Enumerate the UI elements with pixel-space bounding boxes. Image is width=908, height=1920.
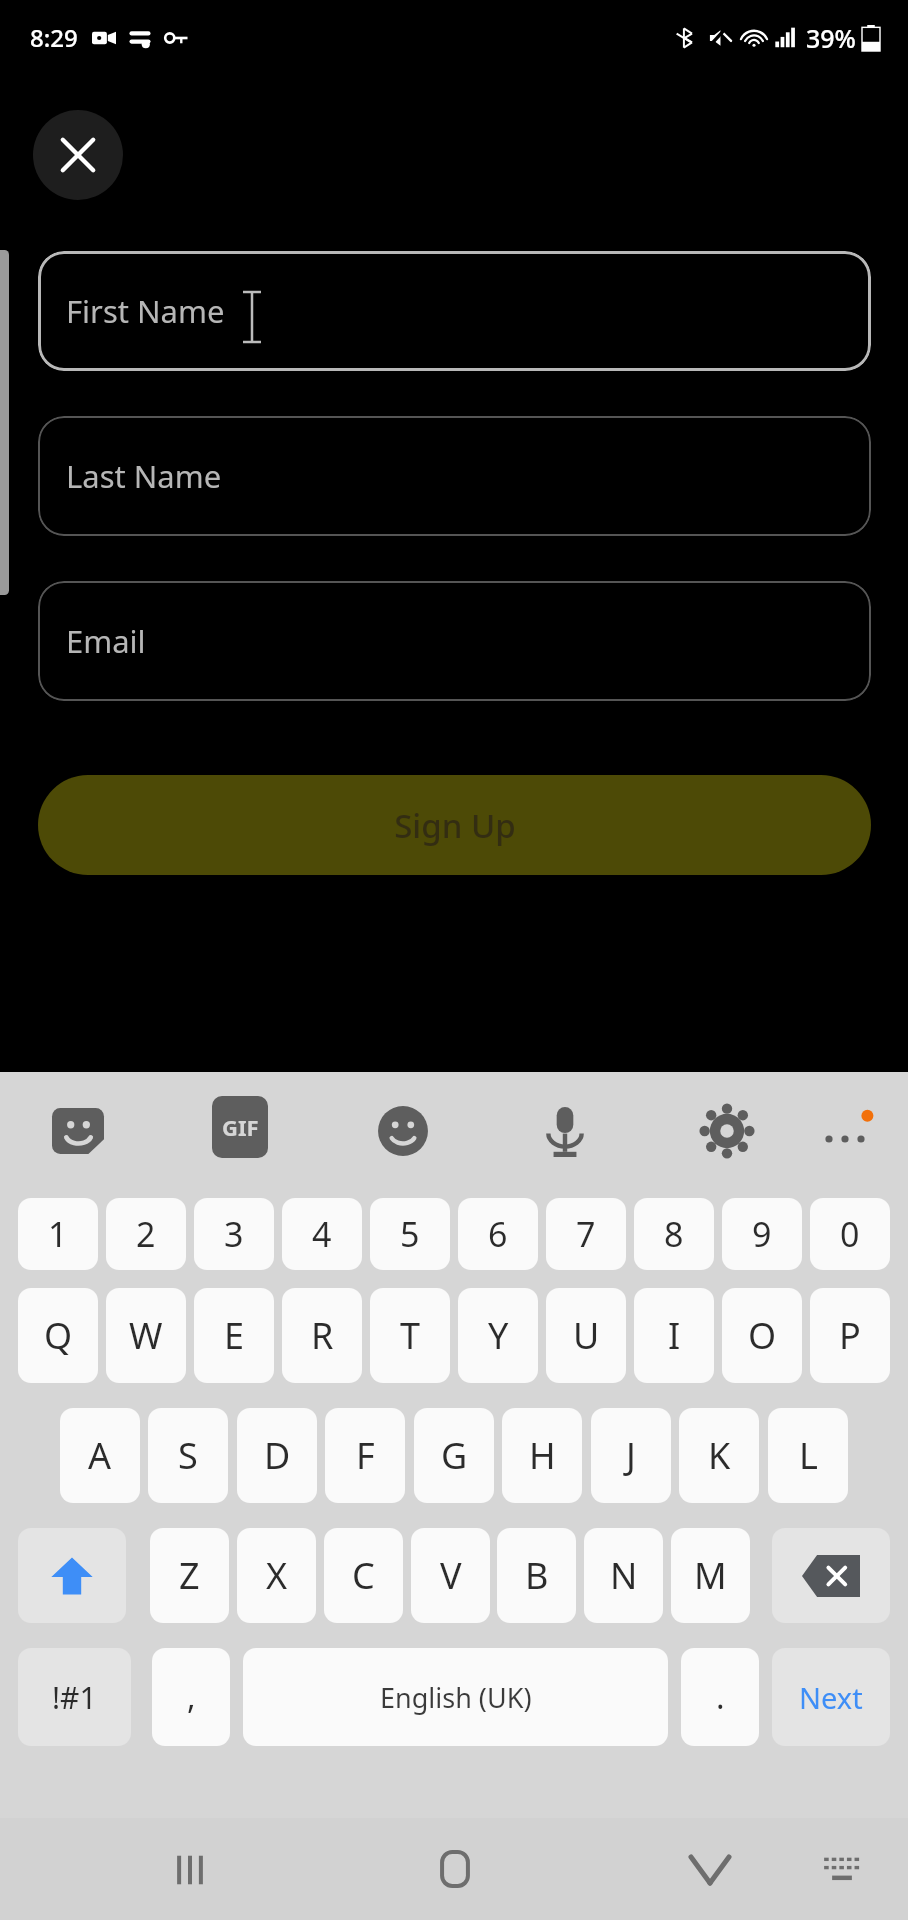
staticText: L — [799, 1431, 818, 1480]
button[interactable]: O — [722, 1288, 802, 1383]
button[interactable]: T — [370, 1288, 450, 1383]
button[interactable]: . — [681, 1648, 759, 1746]
staticText: . — [716, 1675, 725, 1719]
staticText: T — [400, 1311, 421, 1360]
button[interactable]: Stickers — [42, 1095, 114, 1167]
button[interactable]: A — [60, 1408, 140, 1503]
staticText: N — [610, 1551, 638, 1600]
button[interactable]: L — [768, 1408, 848, 1503]
staticText: 0 — [840, 1211, 860, 1257]
staticText: X — [266, 1551, 288, 1600]
button[interactable]: B — [497, 1528, 576, 1623]
button[interactable]: R — [282, 1288, 362, 1383]
button[interactable]: 9 — [722, 1198, 802, 1270]
button[interactable]: V — [411, 1528, 490, 1623]
button[interactable]: 3 — [194, 1198, 274, 1270]
staticText: H — [529, 1431, 556, 1480]
staticText: G — [441, 1431, 468, 1480]
staticText: C — [352, 1551, 375, 1600]
button[interactable]: !#1 — [18, 1648, 131, 1746]
button[interactable]: Last Name — [38, 416, 871, 536]
button[interactable]: Hide keyboard — [680, 1840, 740, 1900]
button[interactable]: G — [414, 1408, 494, 1503]
button[interactable]: Home — [424, 1838, 486, 1900]
button[interactable]: W — [106, 1288, 186, 1383]
staticText: P — [839, 1311, 861, 1360]
staticText: 2 — [136, 1211, 156, 1257]
staticText: 1 — [48, 1211, 68, 1257]
staticText: 6 — [488, 1211, 508, 1257]
button[interactable]: Shift — [18, 1528, 126, 1623]
staticText: 5 — [400, 1211, 420, 1257]
button[interactable]: Emoji — [367, 1095, 439, 1167]
button[interactable]: 5 — [370, 1198, 450, 1270]
button[interactable]: C — [324, 1528, 403, 1623]
staticText: D — [264, 1431, 291, 1480]
button[interactable]: D — [237, 1408, 317, 1503]
button[interactable]: Y — [458, 1288, 538, 1383]
button[interactable]: P — [810, 1288, 890, 1383]
staticText: 7 — [576, 1211, 596, 1257]
staticText: Z — [179, 1551, 200, 1600]
staticText: Q — [44, 1311, 73, 1360]
button[interactable]: M — [671, 1528, 750, 1623]
staticText: W — [129, 1311, 163, 1360]
button[interactable]: F — [325, 1408, 405, 1503]
button[interactable]: English (UK) — [243, 1648, 668, 1746]
button[interactable]: Next — [772, 1648, 890, 1746]
staticText: I — [668, 1311, 681, 1360]
button[interactable]: S — [148, 1408, 228, 1503]
staticText: U — [573, 1311, 600, 1360]
staticText: Y — [488, 1311, 509, 1360]
staticText: F — [356, 1431, 375, 1480]
staticText: Email — [66, 620, 146, 662]
button[interactable]: First Name — [38, 251, 871, 371]
staticText: English (UK) — [380, 1679, 532, 1716]
button[interactable]: 4 — [282, 1198, 362, 1270]
staticText: 9 — [752, 1211, 772, 1257]
button[interactable]: Q — [18, 1288, 98, 1383]
staticText: S — [178, 1431, 198, 1480]
button[interactable]: Voice input — [529, 1095, 601, 1167]
staticText: R — [311, 1311, 334, 1360]
button[interactable]: U — [546, 1288, 626, 1383]
button[interactable]: Backspace — [772, 1528, 890, 1623]
staticText: Sign Up — [394, 803, 516, 848]
staticText: , — [187, 1675, 196, 1719]
button[interactable]: N — [584, 1528, 663, 1623]
button[interactable]: E — [194, 1288, 274, 1383]
button[interactable]: Close — [33, 110, 123, 200]
staticText: J — [626, 1431, 636, 1480]
staticText: A — [88, 1431, 112, 1480]
button[interactable]: , — [152, 1648, 230, 1746]
staticText: 8:29 — [30, 21, 78, 54]
staticText: !#1 — [52, 1677, 97, 1718]
staticText: V — [440, 1551, 462, 1600]
staticText: First Name — [66, 290, 225, 332]
button[interactable]: I — [634, 1288, 714, 1383]
button[interactable]: K — [679, 1408, 759, 1503]
button[interactable]: 8 — [634, 1198, 714, 1270]
button[interactable]: Recents — [160, 1840, 220, 1900]
staticText: GIF — [222, 1112, 259, 1142]
button[interactable]: 6 — [458, 1198, 538, 1270]
staticText: 3 — [224, 1211, 244, 1257]
staticText: O — [748, 1311, 777, 1360]
staticText: B — [525, 1551, 549, 1600]
button[interactable]: Sign Up — [38, 775, 871, 875]
button[interactable]: J — [591, 1408, 671, 1503]
button[interactable]: More options — [805, 1095, 885, 1175]
button[interactable]: H — [502, 1408, 582, 1503]
staticText: 4 — [312, 1211, 332, 1257]
button[interactable]: 7 — [546, 1198, 626, 1270]
button[interactable]: Email — [38, 581, 871, 701]
button[interactable]: Z — [150, 1528, 229, 1623]
button[interactable]: 2 — [106, 1198, 186, 1270]
button[interactable]: GIF — [208, 1095, 272, 1159]
button[interactable]: 0 — [810, 1198, 890, 1270]
button[interactable]: Switch keyboard — [812, 1840, 872, 1900]
button[interactable]: 1 — [18, 1198, 98, 1270]
button[interactable]: X — [237, 1528, 316, 1623]
staticText: E — [224, 1311, 245, 1360]
button[interactable]: Keyboard settings — [691, 1095, 763, 1167]
